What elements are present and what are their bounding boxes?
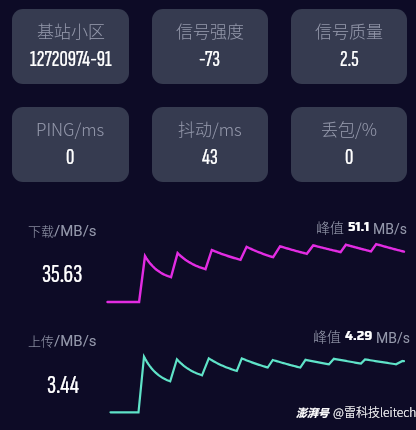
staticText: 峰值 xyxy=(313,326,341,346)
staticText: 上传/MB/s xyxy=(28,331,97,350)
button[interactable]: 信号质量 xyxy=(291,9,407,84)
staticText: 43 xyxy=(202,143,218,171)
button[interactable]: 抖动/ms xyxy=(152,107,268,182)
staticText: 0 xyxy=(345,143,354,171)
staticText: 下载/MB/s xyxy=(28,221,97,240)
staticText: PING/ms xyxy=(36,116,105,141)
button[interactable]: 丢包/% xyxy=(291,107,407,182)
button[interactable]: PING/ms xyxy=(12,107,129,182)
staticText: 信号强度 xyxy=(176,18,244,43)
button[interactable]: 信号强度 xyxy=(152,9,268,84)
staticText: 丢包/% xyxy=(321,116,377,141)
staticText: 澎湃号 xyxy=(296,404,329,420)
staticText: 0 xyxy=(66,143,75,171)
staticText: -73 xyxy=(199,45,221,73)
staticText: 峰值 xyxy=(316,217,344,237)
staticText: 信号质量 xyxy=(315,18,383,43)
staticText: 35.63 xyxy=(42,258,83,290)
staticText: 抖动/ms xyxy=(178,116,242,141)
staticText: 51.1 xyxy=(348,215,370,237)
staticText: 2.5 xyxy=(340,45,359,73)
staticText: @雷科技leitech xyxy=(333,403,416,420)
button[interactable]: 基站小区 xyxy=(12,9,129,84)
staticText: 12720974-91 xyxy=(30,45,112,73)
staticText: 3.44 xyxy=(47,369,79,401)
staticText: MB/s xyxy=(376,330,410,346)
staticText: MB/s xyxy=(373,221,407,237)
staticText: 4.29 xyxy=(345,324,373,346)
staticText: 基站小区 xyxy=(37,18,105,43)
